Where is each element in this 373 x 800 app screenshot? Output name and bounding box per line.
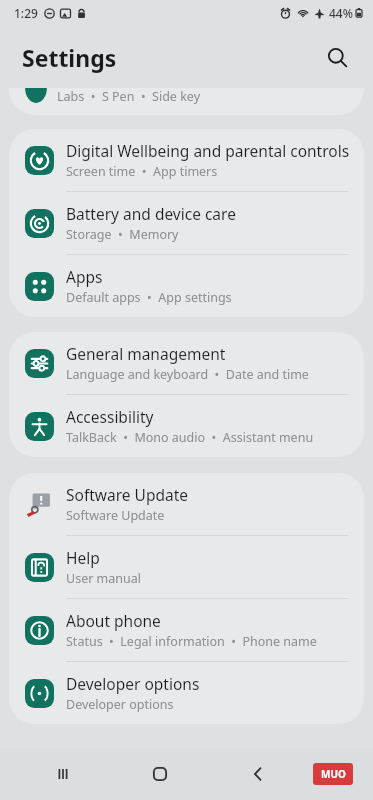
button[interactable]: Home <box>111 748 209 800</box>
button[interactable]: Software Update <box>9 473 364 535</box>
staticText: General management <box>66 343 226 364</box>
button[interactable]: Labs • S Pen • Side key <box>9 88 364 115</box>
staticText: TalkBack • Mono audio • Assistant menu <box>66 429 314 446</box>
staticText: Apps <box>66 266 103 287</box>
staticText: Developer options <box>66 673 200 694</box>
staticText: Digital Wellbeing and parental controls <box>66 140 350 161</box>
button[interactable]: Apps <box>9 255 364 317</box>
staticText: Help <box>66 547 100 568</box>
staticText: 44% <box>329 5 353 21</box>
staticText: About phone <box>66 610 161 631</box>
staticText: Status • Legal information • Phone name <box>66 633 317 650</box>
staticText: Storage • Memory <box>66 226 179 243</box>
staticText: Accessibility <box>66 406 154 427</box>
button[interactable]: Accessibility <box>9 395 364 457</box>
staticText: Labs • S Pen • Side key <box>57 88 201 105</box>
button[interactable]: Digital Wellbeing and parental controls <box>9 129 364 191</box>
button[interactable]: Back <box>209 748 307 800</box>
staticText: Screen time • App timers <box>66 163 218 180</box>
staticText: Battery and device care <box>66 203 236 224</box>
button[interactable]: Battery and device care <box>9 192 364 254</box>
button[interactable]: Help <box>9 536 364 598</box>
button[interactable]: Developer options <box>9 662 364 724</box>
staticText: MUO <box>321 767 346 781</box>
staticText: Software Update <box>66 507 165 524</box>
staticText: Default apps • App settings <box>66 289 232 306</box>
button[interactable]: Recents <box>14 748 111 800</box>
staticText: Developer options <box>66 696 174 713</box>
button[interactable]: About phone <box>9 599 364 661</box>
staticText: Software Update <box>66 484 188 505</box>
button[interactable]: General management <box>9 332 364 394</box>
button[interactable]: Search <box>317 37 357 77</box>
staticText: 1:29 <box>14 5 38 21</box>
staticText: User manual <box>66 570 141 587</box>
staticText: Settings <box>22 42 117 73</box>
staticText: Language and keyboard • Date and time <box>66 366 309 383</box>
